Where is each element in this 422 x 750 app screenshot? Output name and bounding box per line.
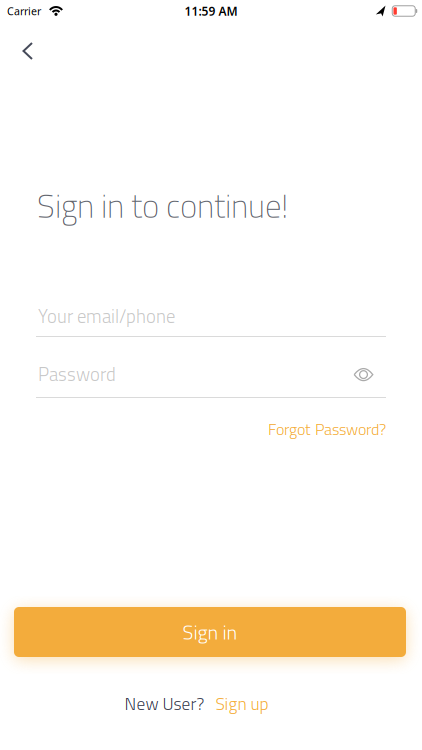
button[interactable]: Sign in [14, 607, 406, 657]
button[interactable]: Sign up [215, 690, 268, 717]
staticText: Sign in to continue! [37, 181, 288, 230]
button[interactable]: Show password [345, 360, 381, 389]
staticText: Your email/phone [38, 302, 175, 330]
button[interactable]: Back [12, 32, 43, 70]
staticText: Sign in [182, 617, 237, 647]
staticText: 11:59 AM [184, 3, 237, 19]
staticText: New User? [124, 690, 204, 717]
staticText: Sign up [215, 690, 268, 717]
button[interactable]: Forgot Password? [268, 417, 386, 441]
staticText: Carrier [7, 4, 41, 18]
staticText: Forgot Password? [268, 417, 386, 441]
staticText: Password [38, 360, 116, 388]
